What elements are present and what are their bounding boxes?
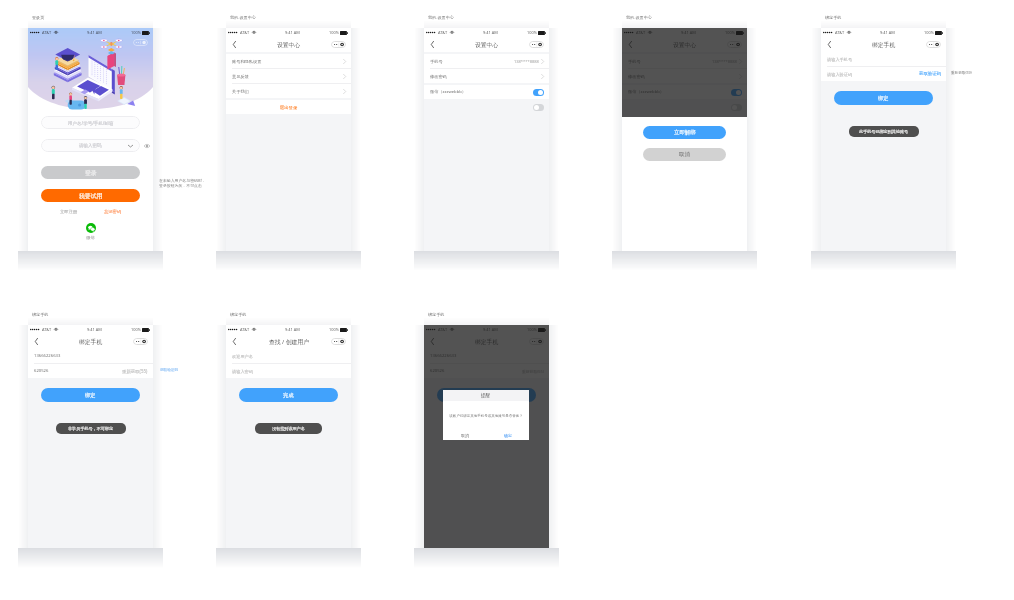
staticText: 确定: [504, 433, 512, 438]
button[interactable]: 登录: [41, 166, 140, 179]
button[interactable]: Menu: [133, 39, 148, 46]
staticText: 没有找到该用户名: [272, 426, 305, 431]
staticText: 登录页: [32, 15, 45, 20]
staticText: 138****8888: [712, 59, 737, 64]
button[interactable]: 请输入密码: [226, 364, 351, 378]
staticText: 该账户已绑定其他手机号或其他账号是否替换？: [449, 414, 523, 418]
staticText: 9:41 AM: [681, 30, 696, 35]
button[interactable]: 重新获取(55): [122, 368, 148, 374]
button[interactable]: 意见反馈: [226, 69, 351, 83]
staticText: AT&T: [438, 327, 448, 332]
button[interactable]: Show password: [142, 139, 151, 152]
button[interactable]: 微信（zzzwebbb）: [424, 85, 549, 99]
button[interactable]: Menu: [529, 41, 544, 48]
staticText: AT&T: [42, 327, 52, 332]
button[interactable]: 取消: [643, 148, 726, 161]
staticText: 绑定手机: [475, 338, 499, 345]
button[interactable]: Back: [821, 37, 837, 52]
button[interactable]: 此手机号已绑定到其他账号: [859, 129, 909, 134]
button[interactable]: 账号和隐私设置: [226, 54, 351, 68]
staticText: AT&T: [438, 30, 448, 35]
staticText: 非学员手机号，不可绑定: [68, 426, 114, 431]
button[interactable]: 确定: [486, 430, 529, 440]
button[interactable]: 请输入密码: [41, 139, 140, 152]
staticText: 138****8888: [514, 59, 539, 64]
button[interactable]: Back: [226, 37, 242, 52]
staticText: AT&T: [636, 30, 646, 35]
staticText: 100%: [725, 30, 735, 35]
button[interactable]: Back: [424, 37, 440, 52]
button[interactable]: Toggle: [533, 89, 544, 96]
button[interactable]: 请输入验证码: [821, 67, 946, 81]
button[interactable]: 完成: [239, 388, 338, 402]
button[interactable]: Back: [424, 334, 440, 349]
button[interactable]: Menu: [926, 41, 941, 48]
staticText: 请输入验证码: [827, 72, 853, 77]
button[interactable]: 手机号: [424, 54, 549, 68]
button[interactable]: 绑定: [834, 91, 933, 105]
staticText: 13666226633: [34, 353, 61, 359]
staticText: 绑定手机: [230, 312, 247, 317]
staticText: AT&T: [42, 30, 52, 35]
button[interactable]: Menu: [529, 338, 544, 345]
staticText: 100%: [527, 30, 537, 35]
button[interactable]: 忘记密码: [104, 209, 122, 214]
button[interactable]: 绑定: [41, 388, 140, 402]
staticText: 微信: [85, 235, 96, 240]
staticText: 欢迎用户名: [232, 354, 253, 359]
button[interactable]: Back: [28, 334, 44, 349]
button[interactable]: 欢迎用户名: [226, 349, 351, 363]
button[interactable]: Toggle: [731, 104, 742, 111]
button[interactable]: Back: [226, 334, 242, 349]
button[interactable]: 立即注册: [60, 209, 78, 214]
staticText: 登录: [85, 169, 97, 176]
button[interactable]: 修改密码: [424, 69, 549, 83]
staticText: 立即解绑: [674, 129, 696, 136]
staticText: 9:41 AM: [87, 30, 102, 35]
button[interactable]: Toggle: [533, 104, 544, 111]
staticText: 完成: [283, 392, 294, 399]
staticText: 手机号: [430, 59, 443, 64]
button[interactable]: 获取验证码: [919, 71, 941, 77]
button[interactable]: Menu: [727, 41, 742, 48]
staticText: 微信（zzzwebbb）: [430, 89, 467, 95]
staticText: 提醒: [481, 393, 491, 399]
staticText: 9:41 AM: [87, 327, 102, 332]
button[interactable]: 非学员手机号，不可绑定: [68, 426, 114, 431]
staticText: 在未输入用户名与密码时， 登录按钮为灰，不可点击: [159, 178, 206, 188]
staticText: 设置中心: [673, 41, 697, 48]
button[interactable]: 立即解绑: [643, 126, 726, 139]
button[interactable]: Menu: [133, 338, 148, 345]
button[interactable]: WeChat login: [86, 223, 96, 233]
button[interactable]: 用户名/学号/手机/邮箱: [41, 116, 140, 129]
button[interactable]: 我要试用: [41, 189, 140, 202]
staticText: 设置中心: [277, 41, 301, 48]
button[interactable]: 微信（zzzwebbb）: [622, 85, 747, 99]
button[interactable]: 请输入手机号: [821, 52, 946, 66]
button[interactable]: Menu: [331, 41, 346, 48]
staticText: 9:41 AM: [285, 327, 300, 332]
button[interactable]: 退出登录: [226, 100, 351, 114]
button[interactable]: Back: [622, 37, 638, 52]
button[interactable]: Toggle: [731, 89, 742, 96]
staticText: 9:41 AM: [483, 30, 498, 35]
button[interactable]: 620526: [28, 364, 153, 378]
staticText: AT&T: [240, 30, 250, 35]
staticText: 查找 / 创建用户: [269, 338, 309, 346]
button[interactable]: 关于我们: [226, 84, 351, 98]
staticText: 获取验证码: [919, 71, 941, 77]
staticText: 微信（zzzwebbb）: [628, 89, 665, 95]
staticText: 9:41 AM: [880, 30, 895, 35]
button[interactable]: 13666226633: [28, 349, 153, 363]
button[interactable]: Menu: [331, 338, 346, 345]
button[interactable]: 取消: [443, 430, 486, 440]
staticText: 关于我们: [232, 89, 249, 94]
staticText: 用户名/学号/手机/邮箱: [68, 120, 114, 126]
button[interactable]: 没有找到该用户名: [272, 426, 305, 431]
staticText: 请输入手机号: [827, 57, 853, 62]
staticText: 意见反馈: [232, 74, 249, 79]
